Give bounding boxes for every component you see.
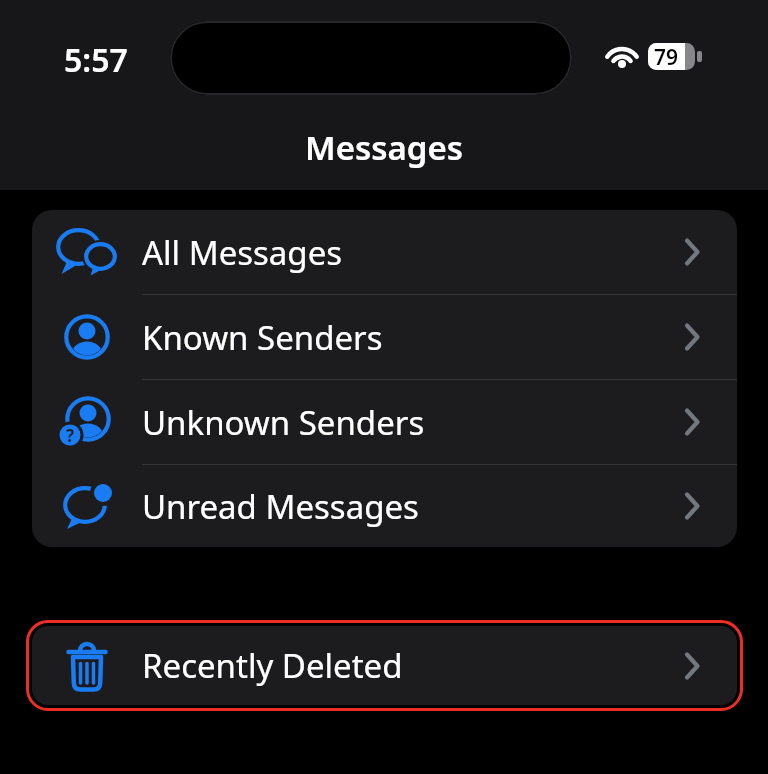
staticText: Recently Deleted (142, 643, 403, 688)
staticText: 5:57 (64, 38, 128, 82)
staticText: Known Senders (142, 315, 383, 360)
button[interactable]: Recently Deleted (32, 626, 737, 705)
button[interactable]: All Messages (32, 210, 737, 294)
staticText: Messages (305, 125, 464, 170)
staticText: All Messages (142, 230, 343, 275)
staticText: Unread Messages (142, 484, 419, 529)
button[interactable]: Known Senders (32, 295, 737, 379)
button[interactable]: ? (32, 380, 737, 464)
staticText: ? (66, 424, 75, 447)
staticText: Unknown Senders (142, 400, 425, 445)
button[interactable]: Unread Messages (32, 465, 737, 547)
staticText: 79 (654, 43, 679, 70)
